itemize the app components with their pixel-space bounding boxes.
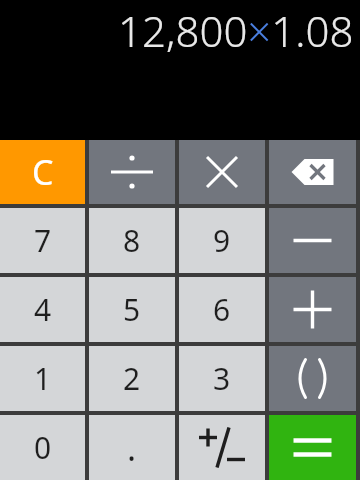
button[interactable]: Equals bbox=[269, 415, 356, 480]
button[interactable]: 7 bbox=[0, 208, 85, 273]
button[interactable]: Plus bbox=[269, 277, 356, 342]
staticText: 6 bbox=[213, 289, 231, 330]
button[interactable]: Minus bbox=[269, 208, 356, 273]
button[interactable]: Parentheses bbox=[269, 346, 356, 411]
button[interactable]: 2 bbox=[89, 346, 175, 411]
staticText: 3 bbox=[213, 358, 231, 399]
staticText: 8 bbox=[123, 220, 141, 261]
button[interactable]: 6 bbox=[179, 277, 265, 342]
staticText: 7 bbox=[34, 220, 52, 261]
staticText: 9 bbox=[213, 220, 231, 261]
staticText: 0 bbox=[34, 427, 52, 468]
staticText: 1 bbox=[34, 358, 52, 399]
button[interactable]: Multiply bbox=[179, 140, 265, 204]
button[interactable]: 5 bbox=[89, 277, 175, 342]
staticText: 5 bbox=[123, 289, 141, 330]
staticText: 4 bbox=[34, 289, 52, 330]
button[interactable]: 0 bbox=[0, 415, 85, 480]
button[interactable]: Divide bbox=[89, 140, 175, 204]
button[interactable]: 9 bbox=[179, 208, 265, 273]
button[interactable]: 8 bbox=[89, 208, 175, 273]
staticText: C bbox=[32, 149, 54, 195]
button[interactable]: 4 bbox=[0, 277, 85, 342]
staticText: 12,800×1.08 bbox=[118, 2, 354, 59]
button[interactable]: 3 bbox=[179, 346, 265, 411]
staticText: . bbox=[127, 425, 137, 471]
button[interactable]: Plus minus sign bbox=[179, 415, 265, 480]
button[interactable]: Backspace bbox=[269, 140, 356, 204]
staticText: 2 bbox=[123, 358, 141, 399]
button[interactable]: 1 bbox=[0, 346, 85, 411]
button[interactable]: C bbox=[0, 140, 85, 204]
button[interactable]: . bbox=[89, 415, 175, 480]
